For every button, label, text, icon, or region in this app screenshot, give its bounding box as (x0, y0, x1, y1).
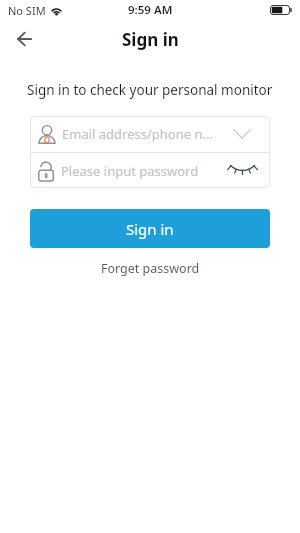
button[interactable]: Please input password (30, 153, 270, 188)
button[interactable]: Sign in (30, 209, 270, 248)
staticText: No SIM (8, 3, 46, 18)
button[interactable] (8, 23, 40, 55)
staticText: Sign in to check your personal monitor (27, 81, 273, 99)
staticText: Forget password (101, 260, 200, 277)
button[interactable] (230, 164, 255, 177)
button[interactable]: Forget password (93, 258, 208, 279)
staticText: Sign in (122, 28, 179, 51)
button[interactable] (233, 129, 251, 139)
staticText: Sign in (126, 219, 174, 239)
staticText: Email address/phone n... (62, 125, 213, 143)
button[interactable]: Email address/phone n... (30, 116, 270, 152)
staticText: 9:59 AM (128, 2, 173, 18)
staticText: Please input password (61, 162, 199, 180)
